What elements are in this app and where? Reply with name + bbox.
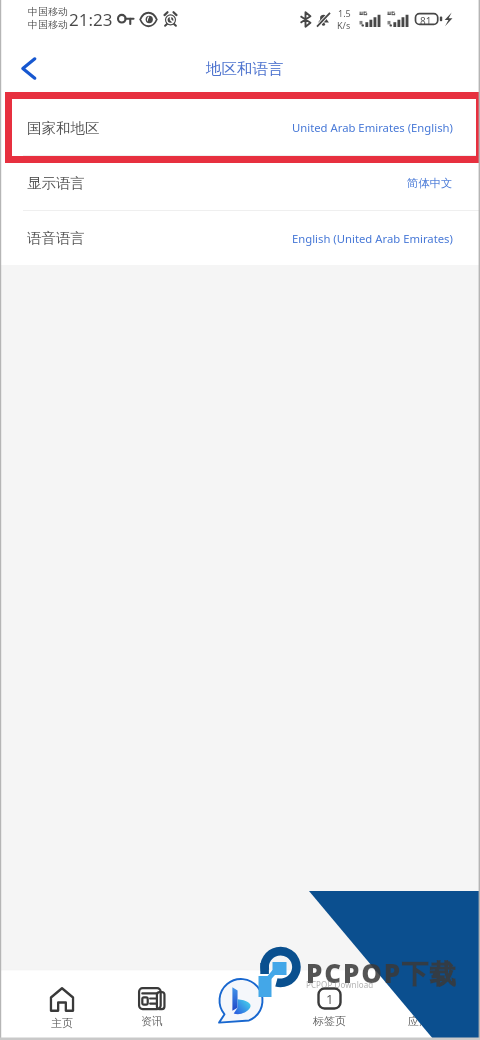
button[interactable]: Back <box>8 49 48 89</box>
staticText: 1 <box>326 990 334 1008</box>
button[interactable]: 国家和地区 <box>0 100 480 155</box>
staticText: 中国移动 <box>28 18 68 31</box>
staticText: 地区和语言 <box>206 59 284 79</box>
staticText: 81 <box>420 14 432 28</box>
staticText: K/s <box>337 19 351 31</box>
button[interactable]: News <box>107 971 196 1040</box>
staticText: 国家和地区 <box>27 119 100 137</box>
staticText: 简体中文 <box>407 176 453 190</box>
staticText: 21:23 <box>69 8 113 31</box>
button[interactable]: Home <box>17 971 107 1040</box>
staticText: 主页 <box>51 1016 73 1030</box>
button[interactable]: Tabs <box>285 971 374 1040</box>
staticText: PCPOP Download <box>306 979 374 990</box>
staticText: 应用 <box>408 1014 430 1028</box>
staticText: 显示语言 <box>27 174 85 192</box>
button[interactable]: 显示语言 <box>0 156 480 210</box>
staticText: English (United Arab Emirates) <box>292 231 453 246</box>
staticText: 资讯 <box>141 1014 163 1028</box>
staticText: United Arab Emirates (English) <box>292 120 453 135</box>
staticText: 中国移动 <box>28 5 68 18</box>
button[interactable]: 语音语言 <box>0 211 480 265</box>
button[interactable]: Bing search <box>196 971 285 1040</box>
staticText: 1.5 <box>338 7 351 19</box>
staticText: 标签页 <box>313 1014 346 1028</box>
staticText: PCPOP下载 <box>306 955 458 991</box>
staticText: 语音语言 <box>27 229 85 247</box>
button[interactable]: Apps <box>374 971 463 1040</box>
